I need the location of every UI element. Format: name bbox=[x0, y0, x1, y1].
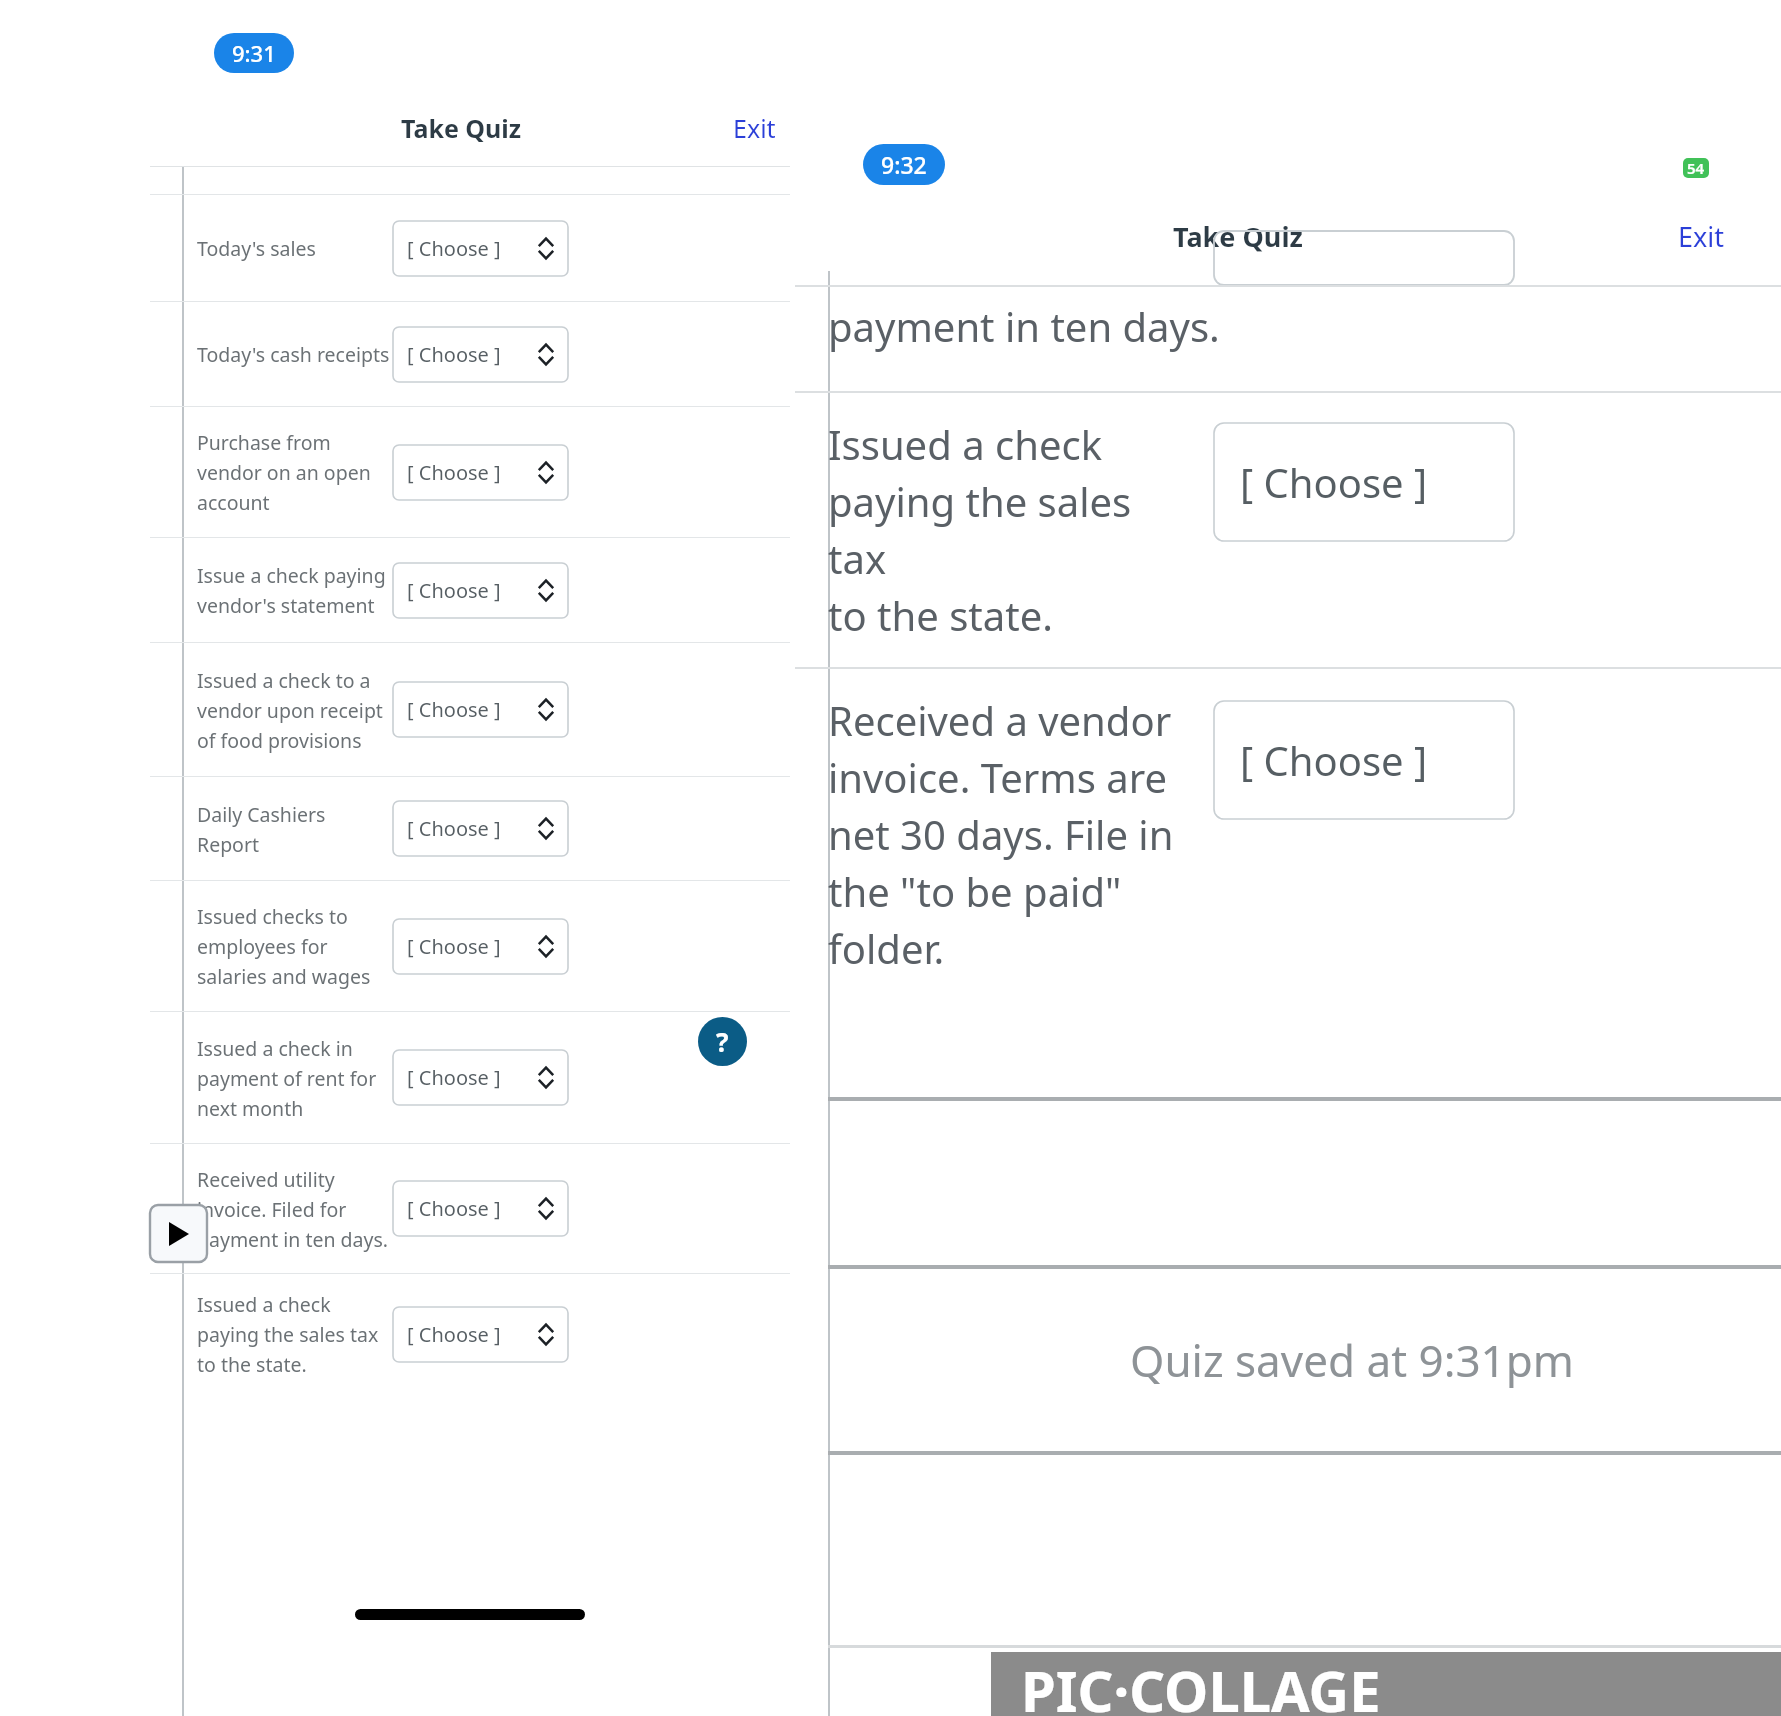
button[interactable]: [ Choose ] bbox=[1214, 423, 1514, 541]
staticText: Received a vendor invoice. Terms are net… bbox=[828, 693, 1174, 975]
staticText: Issued a check to a vendor upon receipt … bbox=[197, 667, 383, 753]
staticText: [ Choose ] bbox=[407, 696, 501, 723]
staticText: Issued a check paying the sales tax to t… bbox=[197, 1291, 379, 1377]
staticText: 54 bbox=[1687, 158, 1705, 178]
button[interactable]: [ Choose ] bbox=[393, 327, 568, 382]
staticText: [ Choose ] bbox=[407, 577, 501, 604]
button[interactable]: [ Choose ] bbox=[393, 801, 568, 856]
staticText: ? bbox=[716, 1024, 729, 1059]
staticText: [ Choose ] bbox=[1240, 733, 1428, 787]
staticText: Received utility invoice. Filed for paym… bbox=[197, 1166, 389, 1252]
button[interactable]: [ Choose ] bbox=[1214, 701, 1514, 819]
staticText: Issued a check paying the sales tax to t… bbox=[828, 417, 1192, 642]
button[interactable]: [ Choose ] bbox=[393, 1050, 568, 1105]
staticText: [ Choose ] bbox=[407, 1321, 501, 1348]
staticText: Purchase from vendor on an open account bbox=[197, 429, 371, 515]
staticText: Daily Cashiers Report bbox=[197, 801, 326, 857]
staticText: 9:31 bbox=[232, 38, 276, 68]
staticText: Take Quiz bbox=[401, 111, 522, 145]
button[interactable]: Exit bbox=[725, 105, 784, 151]
staticText: Issued checks to employees for salaries … bbox=[197, 903, 371, 989]
staticText: [ Choose ] bbox=[407, 815, 501, 842]
button[interactable]: [ Choose ] bbox=[393, 919, 568, 974]
button[interactable]: [ Choose ] bbox=[393, 1181, 568, 1236]
staticText: [ Choose ] bbox=[407, 933, 501, 960]
staticText: payment in ten days. bbox=[828, 299, 1220, 353]
staticText: [ Choose ] bbox=[407, 235, 501, 262]
staticText: Take Quiz bbox=[1173, 218, 1303, 255]
button[interactable]: [ Choose ] bbox=[393, 445, 568, 500]
staticText: Quiz saved at 9:31pm bbox=[1130, 1330, 1574, 1390]
staticText: Issued a check in payment of rent for ne… bbox=[197, 1035, 377, 1121]
staticText: [ Choose ] bbox=[1240, 455, 1428, 509]
button[interactable]: [ Choose ] bbox=[393, 221, 568, 276]
staticText: Today's cash receipts bbox=[197, 341, 390, 368]
button[interactable]: Play bbox=[150, 1205, 207, 1262]
staticText: [ Choose ] bbox=[407, 459, 501, 486]
button[interactable]: [ Choose ] bbox=[393, 563, 568, 618]
staticText: PIC·COLLAGE bbox=[1021, 1652, 1381, 1716]
staticText: Exit bbox=[733, 111, 776, 145]
staticText: Today's sales bbox=[197, 235, 316, 262]
staticText: Exit bbox=[1678, 218, 1725, 255]
staticText: Issue a check paying vendor's statement bbox=[197, 562, 386, 618]
staticText: [ Choose ] bbox=[407, 1195, 501, 1222]
staticText: [ Choose ] bbox=[407, 341, 501, 368]
staticText: 9:32 bbox=[881, 149, 927, 180]
button[interactable]: Help bbox=[698, 1017, 747, 1066]
button[interactable]: [ Choose ] bbox=[393, 682, 568, 737]
staticText: [ Choose ] bbox=[407, 1064, 501, 1091]
button[interactable]: [ Choose ] bbox=[393, 1307, 568, 1362]
button[interactable]: Exit bbox=[1670, 212, 1733, 261]
